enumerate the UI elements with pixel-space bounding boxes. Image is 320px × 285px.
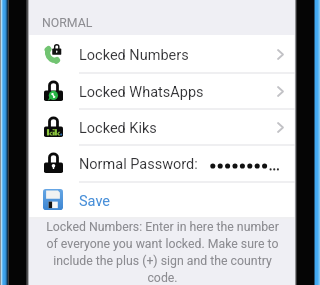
staticText: Save xyxy=(79,193,111,210)
staticText: Normal Password: xyxy=(79,156,198,173)
other: Locked Kiks xyxy=(44,116,63,137)
staticText: Locked Kiks xyxy=(79,120,157,137)
button[interactable]: Locked WhatsApps xyxy=(28,72,296,108)
other: Locked numbers xyxy=(43,43,64,64)
other: Password xyxy=(44,152,63,173)
button[interactable]: Save xyxy=(28,181,296,217)
button[interactable]: NORMAL xyxy=(42,16,93,30)
button[interactable]: Password xyxy=(28,144,296,180)
staticText: Locked Numbers xyxy=(79,47,189,64)
other: Save xyxy=(43,189,63,210)
staticText: Locked Numbers: Enter in here the number… xyxy=(43,220,282,285)
button[interactable]: Locked numbers xyxy=(28,35,296,71)
button[interactable]: Locked Kiks xyxy=(28,108,296,144)
other: Locked WhatsApps xyxy=(44,80,63,101)
staticText: NORMAL xyxy=(42,16,93,30)
staticText: Locked WhatsApps xyxy=(79,84,204,101)
